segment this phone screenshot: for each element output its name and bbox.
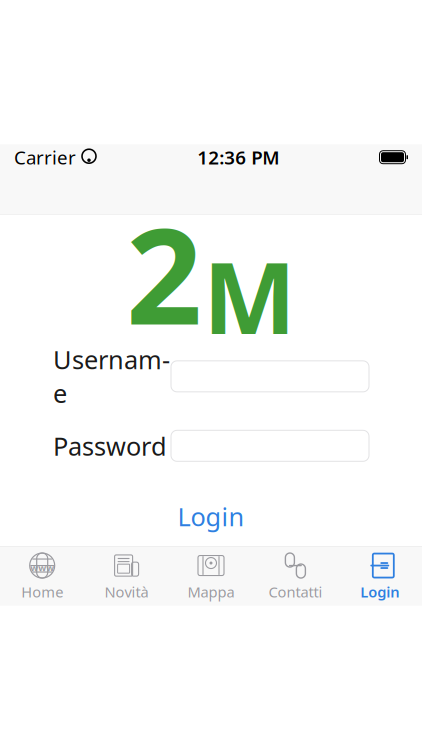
staticText: 12:36 PM: [197, 145, 279, 170]
button[interactable]: Novità: [84, 547, 169, 606]
button[interactable]: www: [0, 547, 84, 606]
staticText: Username: [53, 343, 170, 410]
button[interactable]: Login: [159, 495, 262, 538]
staticText: Home: [21, 582, 63, 601]
staticText: Password: [53, 429, 167, 463]
button[interactable]: Contatti: [253, 547, 338, 606]
staticText: Login: [360, 582, 399, 601]
staticText: Carrier: [14, 145, 76, 170]
staticText: www: [30, 561, 54, 574]
button[interactable]: Mappa: [169, 547, 253, 606]
staticText: Novità: [105, 582, 149, 601]
staticText: Contatti: [268, 582, 322, 601]
staticText: 2: [126, 184, 202, 361]
staticText: M: [203, 230, 296, 361]
button[interactable]: Login: [338, 547, 422, 606]
staticText: Mappa: [187, 582, 234, 601]
staticText: Login: [177, 500, 244, 533]
